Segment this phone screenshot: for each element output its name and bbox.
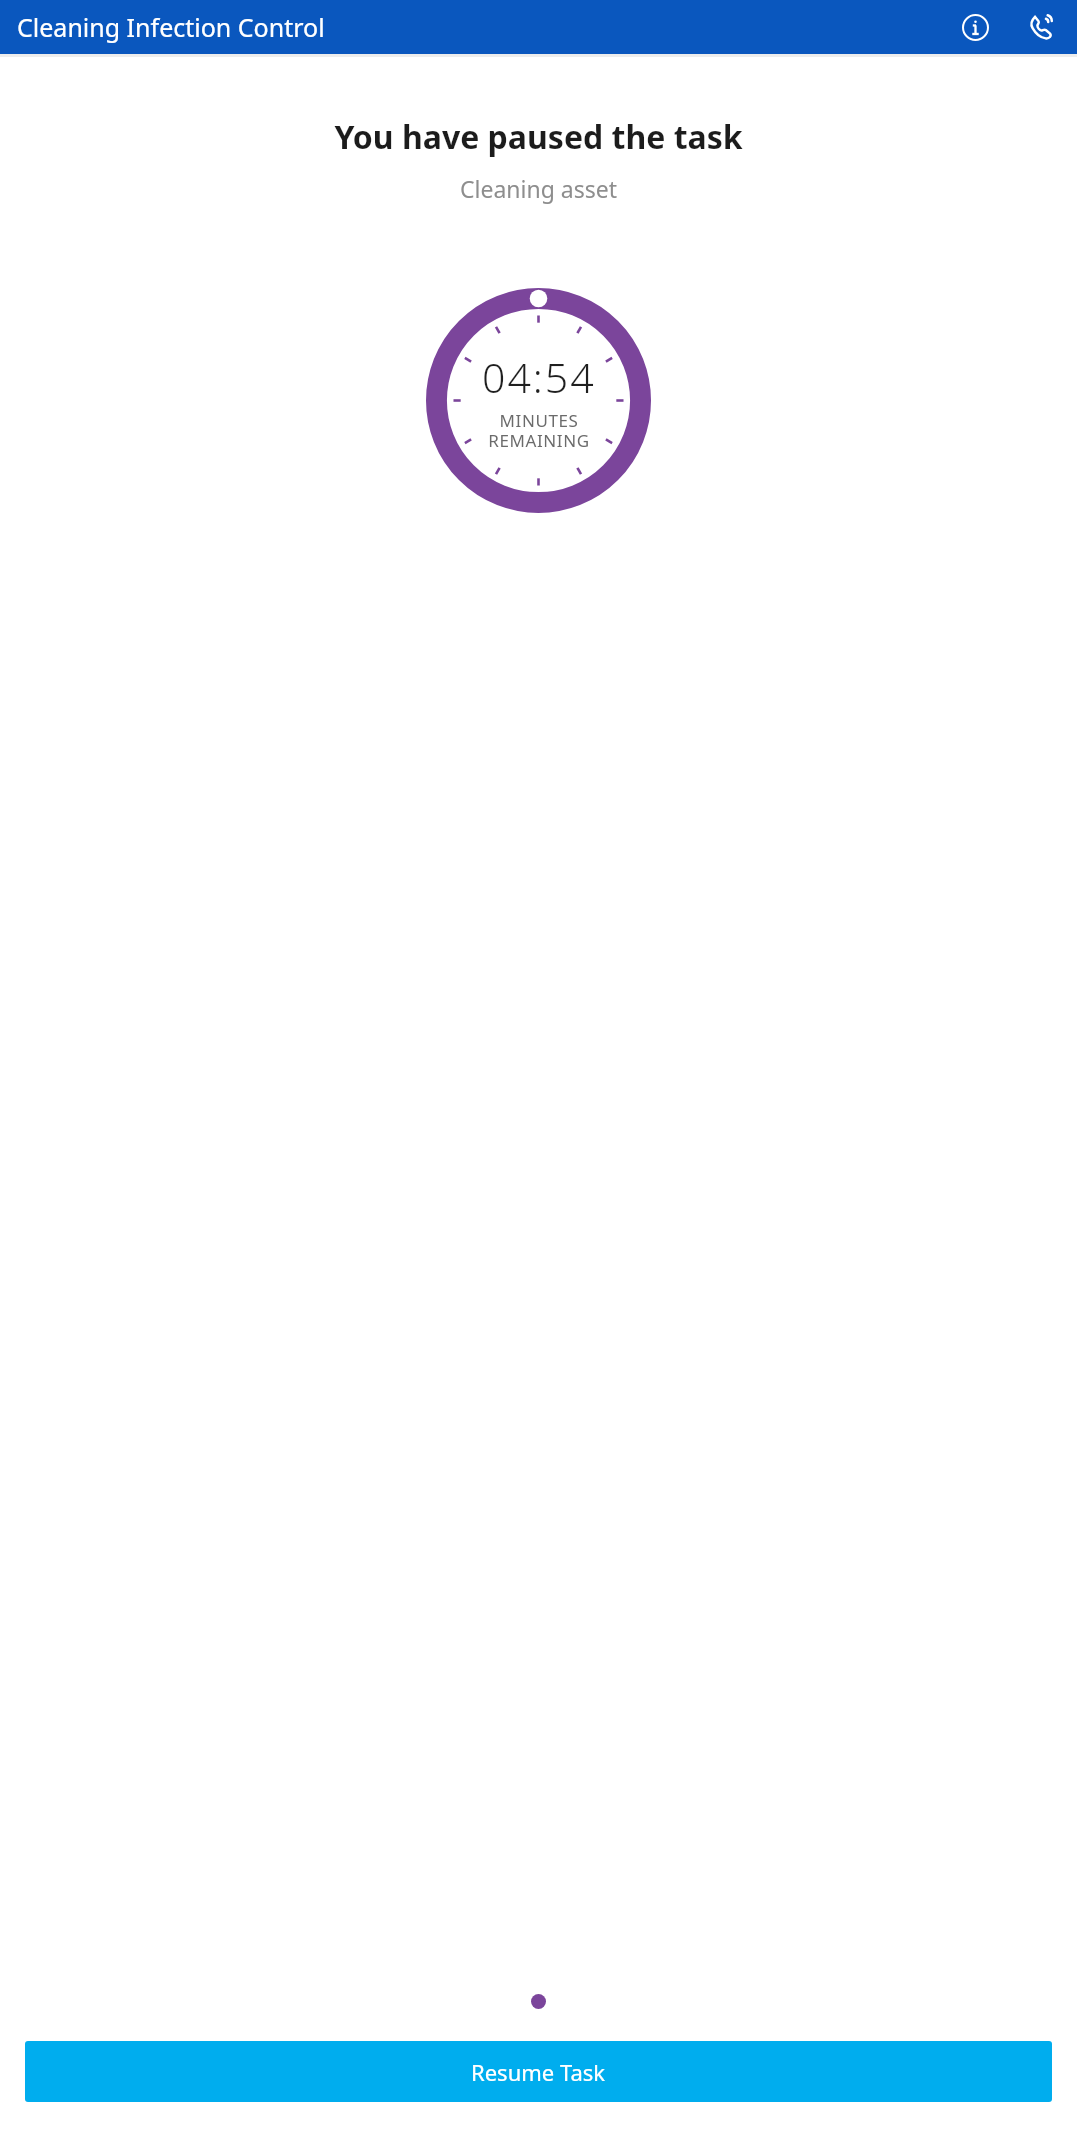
button[interactable]: Call	[1019, 5, 1063, 49]
button[interactable]: Resume Task	[25, 2041, 1052, 2102]
staticText: Resume Task	[471, 2057, 606, 2087]
staticText: You have paused the task	[0, 115, 1077, 159]
staticText: Cleaning asset	[0, 173, 1077, 204]
button[interactable]: Information	[953, 5, 997, 49]
staticText: Cleaning Infection Control	[17, 10, 325, 44]
staticText: MINUTES REMAINING	[488, 409, 590, 452]
staticText: 04:54	[482, 349, 596, 405]
